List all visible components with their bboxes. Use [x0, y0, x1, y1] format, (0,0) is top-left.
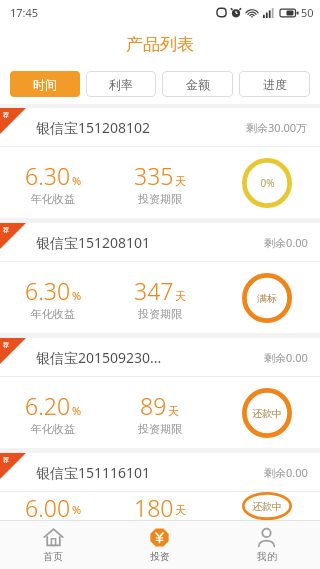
staticText: 我的	[257, 550, 277, 563]
staticText: 335	[134, 160, 174, 191]
button[interactable]: 荐	[0, 108, 320, 218]
button[interactable]: 投资	[106, 521, 213, 569]
staticText: %	[72, 502, 82, 517]
staticText: %	[72, 173, 82, 188]
staticText: 投资期限	[138, 307, 182, 321]
button[interactable]: 荐	[0, 338, 320, 448]
staticText: 荐	[3, 111, 9, 119]
button[interactable]: 金额	[162, 71, 233, 97]
staticText: 89	[140, 390, 167, 421]
staticText: 首页	[43, 550, 63, 563]
staticText: 天	[175, 174, 186, 188]
button[interactable]: 进度	[239, 71, 310, 97]
staticText: 剩余0.00	[264, 350, 308, 365]
button[interactable]: 时间	[10, 71, 80, 97]
staticText: 投资	[150, 550, 170, 563]
staticText: 银信宝151208102	[36, 118, 151, 137]
button[interactable]: 荐	[0, 453, 320, 520]
staticText: 银信宝201509230...	[36, 348, 162, 367]
staticText: 0%	[260, 176, 275, 190]
staticText: 6.20	[25, 390, 71, 421]
staticText: 银信宝151116101	[36, 463, 151, 482]
staticText: 荐	[3, 456, 9, 464]
other: 首页	[43, 527, 64, 548]
staticText: 年化收益	[31, 307, 75, 321]
staticText: 荐	[3, 226, 9, 234]
staticText: 347	[134, 275, 174, 306]
staticText: 17:45	[10, 5, 39, 20]
staticText: 投资期限	[138, 422, 182, 436]
button[interactable]: 利率	[86, 71, 156, 97]
staticText: 金额	[186, 77, 210, 92]
other: 投资	[149, 527, 170, 548]
staticText: 银信宝151208101	[36, 233, 151, 252]
staticText: 时间	[33, 77, 57, 92]
staticText: 投资期限	[138, 192, 182, 206]
staticText: 天	[175, 289, 186, 303]
staticText: %	[72, 403, 82, 418]
staticText: 荐	[3, 341, 9, 349]
other: 我的	[256, 527, 277, 548]
staticText: 剩余0.00	[264, 235, 308, 250]
staticText: 年化收益	[31, 422, 75, 436]
staticText: 产品列表	[126, 34, 194, 55]
staticText: 剩余30.00万	[246, 120, 308, 135]
staticText: 180	[134, 492, 174, 520]
staticText: 还款中	[252, 500, 282, 513]
staticText: 天	[168, 404, 179, 418]
button[interactable]: 荐	[0, 223, 320, 333]
staticText: 满标	[257, 292, 277, 305]
staticText: %	[72, 288, 82, 303]
staticText: 还款中	[252, 407, 282, 420]
button[interactable]: 我的	[213, 521, 320, 569]
staticText: 50	[301, 5, 314, 20]
staticText: 剩余0.00	[264, 465, 308, 480]
staticText: 利率	[109, 77, 133, 92]
staticText: 6.30	[25, 160, 71, 191]
staticText: 进度	[263, 77, 287, 92]
button[interactable]: 首页	[0, 521, 106, 569]
staticText: 天	[175, 503, 186, 517]
staticText: 6.00	[25, 492, 71, 520]
staticText: 6.30	[25, 275, 71, 306]
staticText: 年化收益	[31, 192, 75, 206]
